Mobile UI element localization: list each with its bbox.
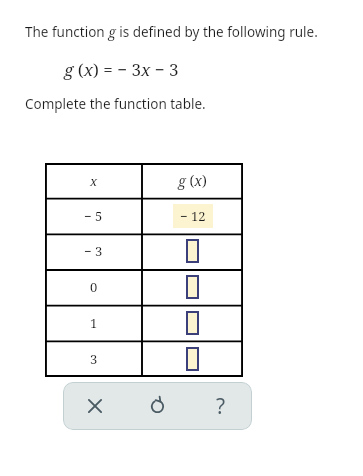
button[interactable]: Answer input <box>186 275 199 299</box>
staticText: 1 <box>90 314 98 332</box>
staticText: ? <box>216 392 226 421</box>
staticText: − 3 <box>84 242 103 260</box>
staticText: g (x) <box>178 171 207 190</box>
staticText: − 5 <box>84 207 103 225</box>
staticText: The function g is defined by the followi… <box>25 23 318 41</box>
button[interactable]: Answer input <box>186 239 199 263</box>
staticText: Complete the function table. <box>25 95 206 113</box>
button[interactable]: Help <box>189 382 252 430</box>
staticText: − 12 <box>180 207 206 225</box>
button[interactable]: Undo <box>126 382 189 430</box>
staticText: g (x) = − 3x − 3 <box>64 58 179 81</box>
button[interactable]: Clear <box>63 382 126 430</box>
staticText: 3 <box>90 350 98 368</box>
staticText: x <box>90 172 98 190</box>
button[interactable]: Answer input <box>186 311 199 335</box>
button[interactable]: Answer input <box>186 347 199 371</box>
staticText: 0 <box>90 278 98 296</box>
button[interactable]: − 12 <box>180 207 206 225</box>
